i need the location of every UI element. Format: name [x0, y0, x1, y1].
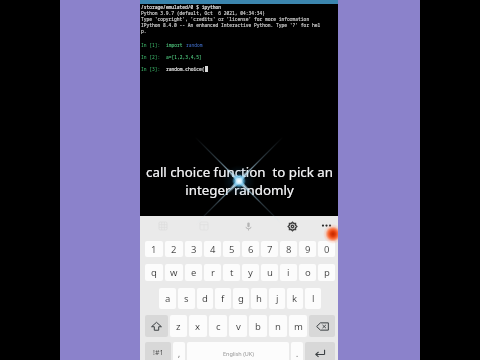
button[interactable]: s	[178, 288, 195, 309]
staticText: 8	[286, 243, 292, 256]
staticText: integer randomly	[185, 181, 294, 199]
staticText: In [3]:	[141, 66, 166, 72]
staticText: v	[236, 320, 241, 333]
staticText: w	[170, 266, 178, 279]
staticText: 9	[305, 243, 311, 256]
button[interactable]: f	[215, 288, 231, 309]
button[interactable]: 4	[204, 241, 221, 257]
staticText: a=[1,2,3,4,5]	[166, 54, 202, 60]
staticText: c	[216, 320, 221, 333]
button[interactable]: 5	[223, 241, 240, 257]
staticText: s	[184, 292, 189, 305]
button[interactable]: u	[261, 264, 278, 281]
button[interactable]: d	[197, 288, 213, 309]
button[interactable]: 1	[145, 241, 163, 257]
button[interactable]: 6	[242, 241, 259, 257]
button[interactable]: More options	[317, 217, 335, 235]
button[interactable]: m	[289, 315, 307, 337]
button[interactable]: o	[299, 264, 316, 281]
button[interactable]: !#1	[145, 342, 171, 360]
button[interactable]: b	[249, 315, 267, 337]
staticText: .	[296, 348, 299, 359]
button[interactable]: Voice input	[239, 217, 257, 235]
staticText: h	[256, 292, 262, 305]
button[interactable]: .	[291, 342, 303, 360]
button[interactable]: 7	[261, 241, 278, 257]
staticText: q	[151, 266, 157, 279]
staticText: d	[202, 292, 208, 305]
staticText: 7	[267, 243, 273, 256]
staticText: 4	[210, 243, 216, 256]
button[interactable]: w	[165, 264, 183, 281]
staticText: t	[230, 266, 234, 279]
button[interactable]: t	[223, 264, 240, 281]
button[interactable]: k	[287, 288, 303, 309]
button[interactable]: p	[318, 264, 335, 281]
button[interactable]: 9	[299, 241, 316, 257]
button[interactable]: v	[229, 315, 247, 337]
staticText: n	[275, 320, 281, 333]
button[interactable]: r	[204, 264, 221, 281]
staticText: English (UK)	[223, 350, 254, 357]
button[interactable]: 2	[165, 241, 183, 257]
button[interactable]: 3	[185, 241, 202, 257]
staticText: k	[292, 292, 298, 305]
button[interactable]: z	[170, 315, 187, 337]
staticText: j	[276, 292, 279, 305]
staticText: !#1	[153, 348, 164, 358]
staticText: random.choice(	[166, 66, 205, 72]
button[interactable]: x	[189, 315, 207, 337]
staticText: y	[248, 266, 253, 279]
staticText: random	[186, 42, 203, 48]
button[interactable]: g	[233, 288, 249, 309]
button[interactable]: Enter	[305, 342, 335, 360]
staticText: call choice function to pick an	[146, 163, 333, 181]
staticText: l	[312, 292, 315, 305]
staticText: z	[176, 320, 181, 333]
staticText: p.	[141, 28, 147, 34]
button[interactable]: i	[280, 264, 297, 281]
button[interactable]: 0	[318, 241, 335, 257]
button[interactable]: Clipboard	[154, 217, 172, 235]
staticText: import	[166, 42, 186, 48]
button[interactable]: n	[269, 315, 287, 337]
staticText: 3	[191, 243, 197, 256]
button[interactable]: 8	[280, 241, 297, 257]
button[interactable]: Settings	[283, 217, 301, 235]
button[interactable]: y	[242, 264, 259, 281]
staticText: p	[324, 266, 330, 279]
staticText: 0	[324, 243, 330, 256]
staticText: ,	[178, 348, 181, 359]
button[interactable]: c	[209, 315, 227, 337]
button[interactable]: q	[145, 264, 163, 281]
staticText: IPython 8.4.0 -- An enhanced Interactive…	[141, 22, 321, 28]
staticText: x	[195, 320, 201, 333]
button[interactable]: h	[251, 288, 267, 309]
button[interactable]: ,	[173, 342, 185, 360]
staticText: 2	[171, 243, 177, 256]
staticText: e	[191, 266, 197, 279]
staticText: r	[211, 266, 215, 279]
staticText: o	[305, 266, 311, 279]
staticText: u	[267, 266, 273, 279]
staticText: m	[294, 320, 303, 333]
staticText: In [1]:	[141, 42, 166, 48]
staticText: 6	[248, 243, 254, 256]
staticText: b	[255, 320, 261, 333]
button[interactable]: Shift	[145, 315, 168, 337]
staticText: 1	[151, 243, 157, 256]
button[interactable]: Backspace	[309, 315, 335, 337]
staticText: a	[165, 292, 171, 305]
button[interactable]: English (UK)	[187, 342, 289, 360]
button[interactable]: a	[159, 288, 176, 309]
staticText: i	[287, 266, 290, 279]
staticText: g	[238, 292, 244, 305]
button[interactable]: l	[305, 288, 321, 309]
staticText: 5	[229, 243, 235, 256]
button[interactable]: j	[269, 288, 285, 309]
button[interactable]: e	[185, 264, 202, 281]
staticText: Type 'copyright', 'credits' or 'license'…	[141, 16, 310, 22]
staticText: In [2]:	[141, 54, 166, 60]
staticText: Python 3.9.7 (default, Oct 6 2021, 04:34…	[141, 10, 266, 16]
